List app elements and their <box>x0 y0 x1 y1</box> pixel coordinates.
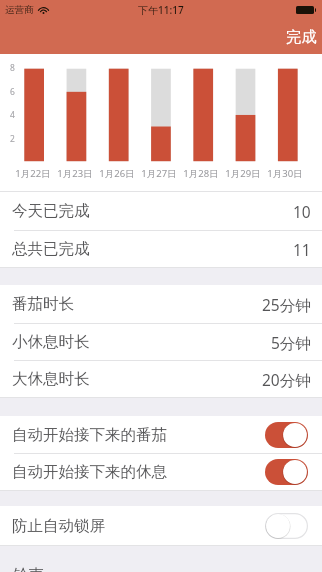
staticText: 今天已完成 <box>12 201 90 221</box>
button[interactable]: 大休息时长 <box>0 361 322 397</box>
button[interactable]: 自动开始接下来的番茄 <box>0 416 322 453</box>
staticText: 下午11:17 <box>138 3 184 17</box>
staticText: 小休息时长 <box>12 332 90 352</box>
button[interactable]: 防止自动锁屏 <box>0 506 322 545</box>
button[interactable]: 小休息时长 <box>0 324 322 360</box>
staticText: 自动开始接下来的番茄 <box>12 425 167 445</box>
button[interactable]: 完成 <box>272 23 322 54</box>
staticText: 1月26日 <box>99 167 135 180</box>
staticText: 6 <box>10 86 15 98</box>
staticText: 番茄时长 <box>12 294 74 314</box>
staticText: 完成 <box>286 27 317 46</box>
button[interactable]: Switch off <box>265 513 308 539</box>
button[interactable]: 总共已完成 <box>0 231 322 267</box>
staticText: 总共已完成 <box>12 239 90 259</box>
staticText: 防止自动锁屏 <box>12 516 105 536</box>
staticText: 1月30日 <box>267 167 303 180</box>
staticText: 铃声 <box>13 565 44 572</box>
staticText: 1月23日 <box>57 167 93 180</box>
staticText: 20分钟 <box>262 369 311 390</box>
button[interactable]: Switch on <box>265 459 308 485</box>
staticText: 1月28日 <box>183 167 219 180</box>
staticText: 1月22日 <box>15 167 51 180</box>
staticText: 1月27日 <box>141 167 177 180</box>
staticText: 大休息时长 <box>12 369 90 389</box>
staticText: 5分钟 <box>271 332 311 353</box>
staticText: 10 <box>293 201 311 222</box>
staticText: 25分钟 <box>262 294 311 315</box>
button[interactable]: 今天已完成 <box>0 192 322 230</box>
staticText: 11 <box>293 239 311 260</box>
button[interactable]: 番茄时长 <box>0 285 322 323</box>
button[interactable]: 自动开始接下来的休息 <box>0 454 322 490</box>
staticText: 1月29日 <box>225 167 261 180</box>
staticText: 8 <box>10 62 15 74</box>
staticText: 4 <box>10 109 15 121</box>
staticText: 2 <box>10 133 15 145</box>
staticText: 运营商 <box>5 4 34 16</box>
button[interactable]: Switch on <box>265 422 308 448</box>
staticText: 自动开始接下来的休息 <box>12 462 167 482</box>
